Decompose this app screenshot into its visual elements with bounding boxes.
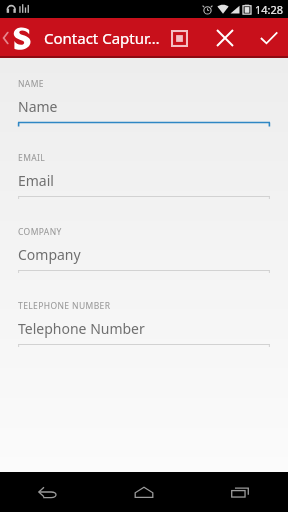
button[interactable]: COMPANY: [0, 226, 288, 274]
button[interactable]: EMAIL: [0, 152, 288, 200]
button[interactable]: Home: [96, 472, 192, 512]
button[interactable]: Recent apps: [192, 472, 288, 512]
button[interactable]: Back: [0, 472, 96, 512]
staticText: Company: [18, 245, 81, 264]
staticText: COMPANY: [18, 226, 62, 238]
staticText: Contact Captur…: [44, 28, 160, 48]
staticText: TELEPHONE NUMBER: [18, 300, 111, 312]
staticText: 14:28: [255, 2, 284, 17]
button[interactable]: NAME: [0, 78, 288, 126]
button[interactable]: Navigate up: [0, 19, 36, 57]
button[interactable]: Capture card: [160, 19, 198, 57]
staticText: Email: [18, 171, 54, 190]
button[interactable]: TELEPHONE NUMBER: [0, 300, 288, 348]
staticText: EMAIL: [18, 152, 46, 164]
staticText: NAME: [18, 78, 44, 90]
button[interactable]: Cancel: [206, 19, 244, 57]
staticText: Name: [18, 97, 58, 116]
staticText: Telephone Number: [18, 319, 145, 338]
button[interactable]: Save: [250, 19, 288, 57]
